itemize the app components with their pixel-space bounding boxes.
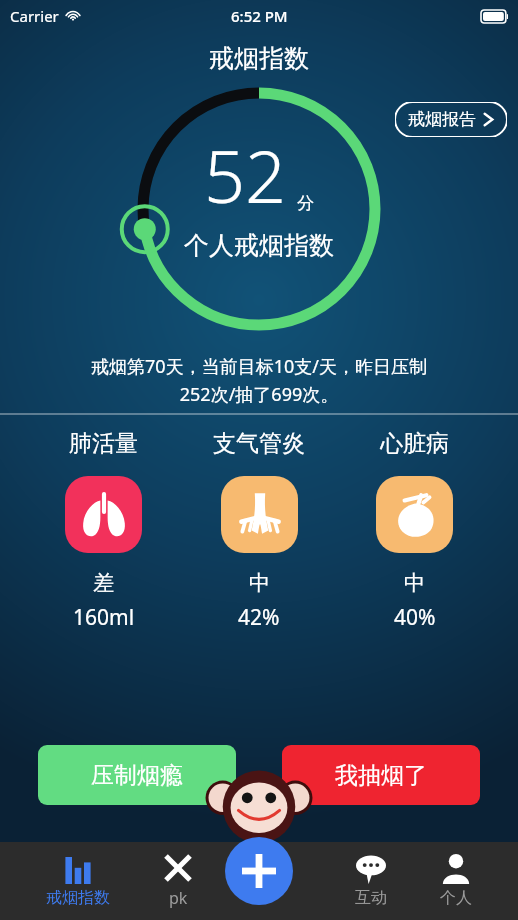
staticText: 6:52 PM [231, 6, 288, 26]
staticText: 我抽烟了 [335, 761, 427, 790]
staticText: 42% [238, 603, 280, 632]
button[interactable]: Add [225, 837, 293, 905]
staticText: 心脏病 [380, 429, 449, 458]
button[interactable]: 心脏病 [370, 429, 459, 632]
staticText: 中 [249, 570, 270, 596]
staticText: 戒烟报告 [408, 109, 476, 130]
button[interactable]: 戒烟报告 [394, 101, 508, 138]
staticText: 互动 [355, 888, 387, 908]
staticText: 戒烟指数 [46, 888, 110, 908]
staticText: 分 [297, 193, 314, 214]
staticText: 戒烟指数 [209, 43, 309, 74]
button[interactable]: 压制烟瘾 [38, 745, 236, 805]
button[interactable]: 互动 [347, 850, 395, 912]
staticText: Carrier [10, 6, 59, 26]
button[interactable]: 我抽烟了 [282, 745, 480, 805]
staticText: 压制烟瘾 [91, 761, 183, 790]
staticText: 戒烟第70天，当前目标10支/天，昨日压制 252次/抽了699次。 [91, 354, 427, 407]
button[interactable]: 肺活量 [59, 429, 148, 632]
staticText: 52 [204, 126, 287, 224]
button[interactable]: 戒烟指数 [38, 850, 118, 912]
button[interactable]: 支气管炎 [207, 429, 311, 632]
staticText: 个人戒烟指数 [184, 230, 334, 261]
staticText: 支气管炎 [213, 429, 305, 458]
staticText: 肺活量 [69, 429, 138, 458]
button[interactable]: 个人 [432, 850, 480, 912]
staticText: 160ml [73, 603, 135, 632]
other: Mascot [210, 760, 308, 850]
staticText: 40% [394, 603, 436, 632]
staticText: 个人 [440, 888, 472, 908]
staticText: 差 [93, 570, 114, 596]
staticText: pk [169, 887, 188, 909]
staticText: 中 [404, 570, 425, 596]
button[interactable]: pk [155, 849, 201, 913]
